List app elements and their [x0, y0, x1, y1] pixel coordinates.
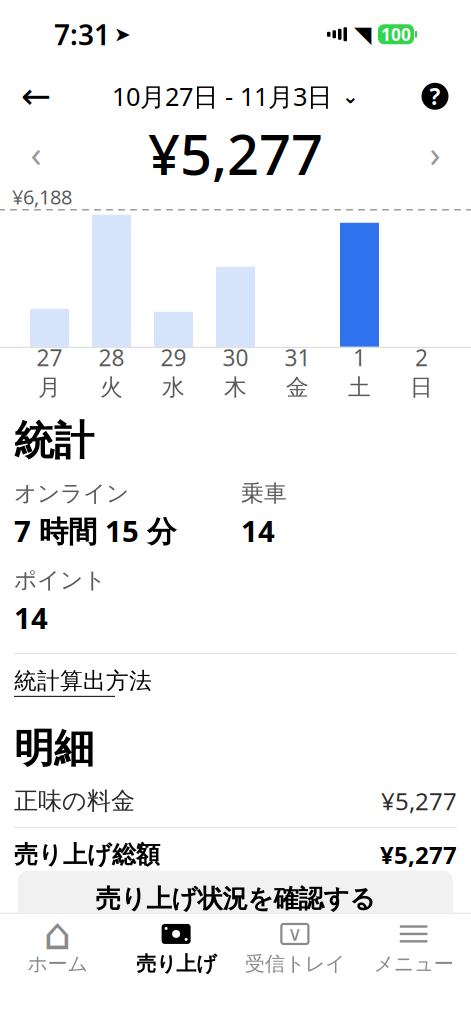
staticText: ∨: [287, 923, 302, 945]
staticText: 10月27日 - 11月3日: [112, 79, 332, 113]
staticText: 1: [353, 342, 366, 372]
staticText: 火: [100, 373, 123, 401]
staticText: ›: [429, 129, 440, 177]
staticText: 7 時間 15 分: [14, 511, 176, 550]
button[interactable]: ⌂: [0, 914, 117, 984]
staticText: 2: [415, 342, 428, 372]
staticText: 27: [36, 342, 62, 372]
staticText: 30: [222, 342, 248, 372]
button[interactable]: 10月27日 - 11月3日: [106, 74, 365, 118]
staticText: ¥5,277: [148, 116, 323, 190]
button[interactable]: ∨: [235, 914, 354, 984]
staticText: 7:31: [54, 16, 110, 53]
staticText: 土: [348, 373, 371, 401]
staticText: 統計算出方法: [14, 667, 152, 695]
staticText: ‹: [30, 129, 41, 177]
button[interactable]: 統計算出方法: [14, 654, 152, 710]
staticText: ポイント: [14, 566, 106, 594]
staticText: ←: [21, 76, 51, 117]
staticText: 売り上げ総額: [14, 840, 160, 869]
staticText: 31: [284, 342, 310, 372]
staticText: 29: [160, 342, 186, 372]
staticText: 100: [381, 23, 411, 46]
staticText: 受信トレイ: [245, 951, 345, 976]
button[interactable]: メニュー: [354, 914, 471, 984]
staticText: 木: [224, 373, 247, 401]
staticText: 日: [410, 373, 433, 401]
button[interactable]: 戻る: [14, 74, 58, 118]
button[interactable]: 売り上げ: [117, 914, 236, 984]
staticText: 明細: [14, 724, 94, 773]
staticText: 28: [98, 342, 124, 372]
staticText: ◥: [354, 21, 371, 47]
staticText: ⌄: [342, 85, 359, 108]
staticText: 水: [162, 373, 185, 401]
button[interactable]: 売り上げ状況を確認する: [18, 871, 453, 927]
staticText: 正味の料金: [14, 786, 135, 816]
staticText: ¥6,188: [12, 183, 72, 210]
staticText: 月: [38, 373, 61, 401]
staticText: ¥5,277: [381, 785, 457, 817]
staticText: 売り上げ状況を確認する: [95, 883, 375, 914]
staticText: 14: [241, 511, 275, 550]
button[interactable]: 前の週: [14, 131, 58, 175]
staticText: ホーム: [27, 951, 87, 976]
staticText: メニュー: [374, 951, 454, 976]
button[interactable]: ヘルプ: [413, 74, 457, 118]
staticText: ➤: [114, 23, 131, 46]
staticText: 売り上げ: [136, 951, 216, 976]
button[interactable]: 次の週: [413, 131, 457, 175]
staticText: ¥5,277: [380, 839, 457, 871]
staticText: ⌂: [43, 909, 71, 959]
staticText: 乗車: [241, 479, 287, 507]
staticText: ?: [429, 81, 440, 111]
staticText: 金: [286, 373, 309, 401]
staticText: オンライン: [14, 479, 129, 507]
staticText: 統計: [14, 416, 94, 465]
staticText: 14: [14, 598, 48, 637]
